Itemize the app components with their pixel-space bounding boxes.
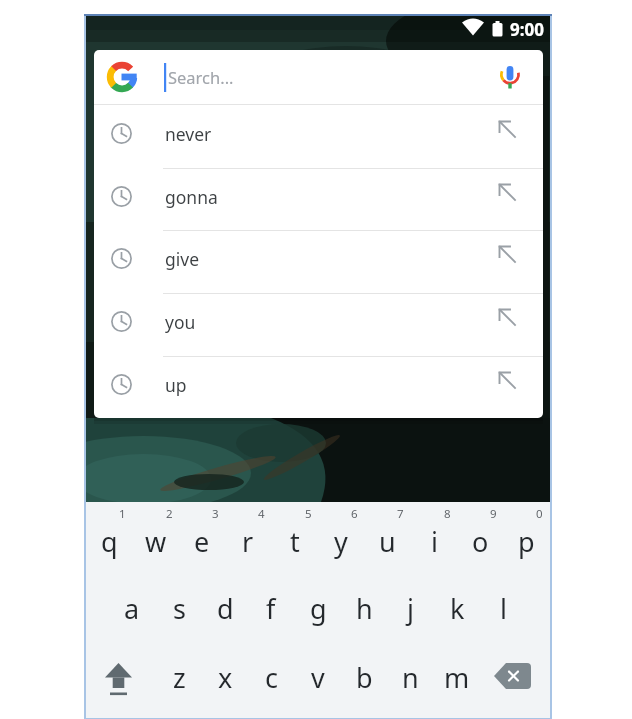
staticText: n: [402, 659, 419, 696]
button[interactable]: 9: [470, 492, 516, 536]
staticText: 5: [305, 506, 312, 522]
staticText: o: [472, 523, 489, 560]
staticText: up: [165, 373, 187, 397]
button[interactable]: m: [434, 655, 480, 699]
button[interactable]: f: [248, 586, 294, 630]
button[interactable]: y: [318, 519, 364, 563]
staticText: w: [145, 523, 167, 560]
button[interactable]: w: [133, 519, 179, 563]
button[interactable]: up: [94, 356, 543, 418]
button[interactable]: p: [503, 519, 549, 563]
staticText: c: [265, 659, 278, 696]
button[interactable]: v: [295, 655, 341, 699]
button[interactable]: never: [94, 105, 543, 168]
staticText: a: [124, 590, 140, 627]
button[interactable]: b: [341, 655, 387, 699]
staticText: 9:00: [510, 18, 544, 41]
button[interactable]: d: [202, 586, 248, 630]
button[interactable]: g: [295, 586, 341, 630]
button[interactable]: i: [411, 519, 457, 563]
button[interactable]: 4: [238, 492, 284, 536]
button[interactable]: c: [248, 655, 294, 699]
button[interactable]: e: [179, 519, 225, 563]
button[interactable]: t: [272, 519, 318, 563]
staticText: 4: [258, 506, 265, 522]
staticText: x: [218, 659, 233, 696]
staticText: 2: [166, 506, 173, 522]
staticText: r: [242, 523, 254, 560]
staticText: Search...: [168, 66, 234, 88]
button[interactable]: 0: [516, 492, 550, 536]
staticText: l: [500, 590, 507, 627]
staticText: v: [311, 659, 325, 696]
button[interactable]: 7: [377, 492, 423, 536]
staticText: 1: [119, 506, 126, 522]
staticText: s: [173, 590, 186, 627]
button[interactable]: x: [202, 655, 248, 699]
staticText: f: [266, 590, 276, 627]
staticText: y: [334, 523, 348, 560]
staticText: e: [194, 523, 210, 560]
button[interactable]: n: [387, 655, 433, 699]
staticText: k: [450, 590, 465, 627]
staticText: never: [165, 122, 212, 146]
button[interactable]: q: [86, 519, 132, 563]
button[interactable]: l: [480, 586, 526, 630]
staticText: b: [356, 659, 373, 696]
staticText: 0: [536, 506, 543, 522]
staticText: 3: [212, 506, 219, 522]
staticText: 6: [351, 506, 358, 522]
staticText: j: [407, 590, 414, 627]
staticText: give: [165, 247, 200, 271]
staticText: 9: [490, 506, 497, 522]
button[interactable]: 5: [285, 492, 331, 536]
button[interactable]: k: [434, 586, 480, 630]
button[interactable]: 3: [192, 492, 238, 536]
staticText: you: [165, 310, 196, 334]
staticText: g: [310, 590, 327, 627]
button[interactable]: j: [387, 586, 433, 630]
staticText: d: [217, 590, 234, 627]
button[interactable]: 1: [99, 492, 145, 536]
staticText: h: [356, 590, 373, 627]
staticText: 8: [444, 506, 451, 522]
button[interactable]: Search...: [94, 50, 543, 104]
button[interactable]: 8: [424, 492, 470, 536]
button[interactable]: give: [94, 230, 543, 293]
staticText: u: [379, 523, 396, 560]
button[interactable]: 6: [331, 492, 377, 536]
button[interactable]: o: [457, 519, 503, 563]
staticText: m: [444, 659, 470, 696]
button[interactable]: gonna: [94, 168, 543, 231]
staticText: t: [290, 523, 300, 560]
button[interactable]: u: [364, 519, 410, 563]
button[interactable]: a: [109, 586, 155, 630]
button[interactable]: h: [341, 586, 387, 630]
button[interactable]: z: [156, 655, 202, 699]
button[interactable]: 2: [146, 492, 192, 536]
staticText: q: [101, 523, 118, 560]
button[interactable]: you: [94, 293, 543, 356]
staticText: p: [518, 523, 535, 560]
staticText: z: [173, 659, 186, 696]
button[interactable]: s: [156, 586, 202, 630]
staticText: gonna: [165, 185, 218, 209]
staticText: 7: [397, 506, 404, 522]
staticText: i: [431, 523, 438, 560]
button[interactable]: r: [225, 519, 271, 563]
